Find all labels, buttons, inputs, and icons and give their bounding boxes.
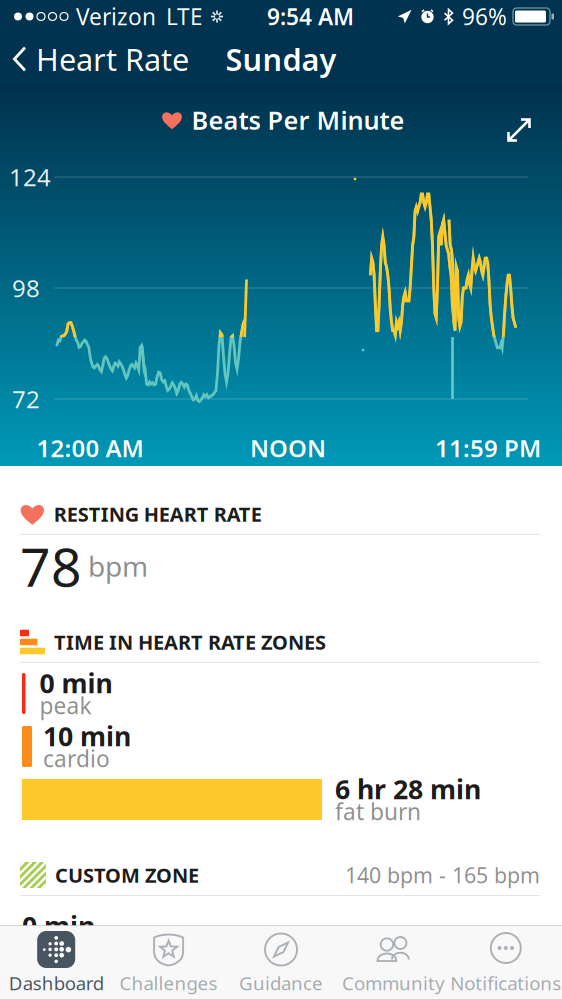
staticText: Sunday <box>225 39 336 79</box>
staticText: Guidance <box>239 970 323 995</box>
staticText: 72 <box>12 383 40 415</box>
staticText: 10 min <box>43 718 131 754</box>
button[interactable]: Challenges <box>112 925 225 999</box>
button[interactable]: Expand chart <box>498 109 539 150</box>
staticText: CUSTOM ZONE <box>55 862 199 888</box>
staticText: TIME IN HEART RATE ZONES <box>54 629 326 655</box>
staticText: Dashboard <box>9 970 104 995</box>
staticText: fat burn <box>335 796 421 826</box>
button[interactable]: Dashboard <box>0 925 112 999</box>
staticText: 11:59 PM <box>435 432 541 464</box>
staticText: Notifications <box>450 970 561 995</box>
staticText: 98 <box>12 272 40 304</box>
staticText: Challenges <box>120 970 218 995</box>
staticText: Beats Per Minute <box>191 103 404 137</box>
staticText: 0 min <box>22 908 95 943</box>
button[interactable]: Community <box>337 925 450 999</box>
staticText: 6 hr 28 min <box>335 771 481 807</box>
staticText: peak <box>39 690 91 720</box>
staticText: LTE <box>166 1 203 31</box>
staticText: RESTING HEART RATE <box>54 501 262 527</box>
staticText: Verizon <box>76 1 156 31</box>
staticText: 0 min <box>39 665 112 701</box>
staticText: 124 <box>9 161 51 193</box>
staticText: 78 <box>20 531 82 601</box>
staticText: NOON <box>250 432 326 464</box>
staticText: 96% <box>462 1 507 31</box>
button[interactable]: Notifications <box>450 925 562 999</box>
button[interactable]: Heart Rate <box>0 33 199 85</box>
staticText: cardio <box>43 743 110 773</box>
staticText: Heart Rate <box>36 39 189 79</box>
staticText: 9:54 AM <box>267 1 354 31</box>
staticText: 140 bpm - 165 bpm <box>345 861 540 889</box>
staticText: bpm <box>88 547 148 585</box>
button[interactable]: Guidance <box>225 925 337 999</box>
staticText: Community <box>342 970 445 995</box>
staticText: 12:00 AM <box>36 432 143 464</box>
